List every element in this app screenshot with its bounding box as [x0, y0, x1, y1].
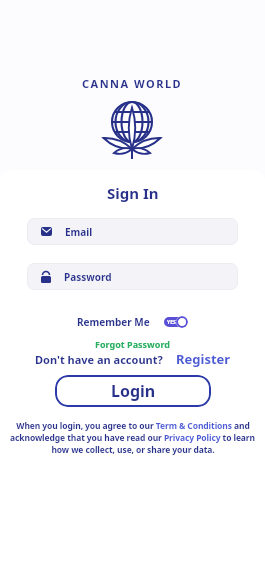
staticText: acknowledge that you have read our Priva…	[10, 432, 255, 444]
staticText: Sign In	[107, 183, 159, 203]
staticText: Don't have an account?	[35, 352, 163, 367]
staticText: CANNA WORLD	[82, 76, 183, 91]
staticText: When you login, you agree to our Term & …	[16, 420, 250, 432]
staticText: YES	[167, 319, 176, 326]
staticText: how we collect, use, or share your data.	[51, 444, 215, 456]
staticText: Password	[64, 270, 112, 284]
button[interactable]: Login	[55, 375, 211, 407]
staticText: Login	[111, 380, 156, 402]
staticText: Email	[65, 225, 93, 239]
button[interactable]: Email	[27, 218, 238, 245]
button[interactable]: Password	[27, 263, 238, 290]
button[interactable]: Forgot Password	[95, 338, 170, 350]
staticText: Remember Me	[77, 315, 150, 329]
button[interactable]: Register	[176, 350, 231, 368]
button[interactable]: YES	[164, 316, 188, 328]
